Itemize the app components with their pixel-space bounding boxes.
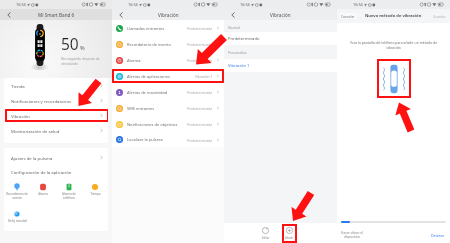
staticText: Vibración 1 bbox=[195, 74, 213, 78]
staticText: Vibración bbox=[11, 113, 30, 119]
button[interactable]: Llamadas entrantes bbox=[112, 20, 224, 36]
staticText: Normal bbox=[228, 25, 240, 30]
staticText: 16:54 bbox=[240, 2, 250, 7]
staticText: Vibración bbox=[158, 12, 179, 18]
staticText: 16:54 bbox=[16, 2, 26, 7]
staticText: 16:54 bbox=[128, 2, 138, 7]
staticText: Cancelar bbox=[341, 14, 355, 18]
staticText: Hacer vibrar el dispositivo bbox=[341, 231, 363, 239]
button[interactable]: Alertas de inactividad bbox=[112, 84, 224, 100]
staticText: Vibración bbox=[270, 12, 291, 18]
staticText: Monitorización de salud bbox=[11, 128, 60, 134]
button[interactable]: Alarma bbox=[112, 52, 224, 68]
button[interactable]: Localizar la pulsera bbox=[112, 132, 224, 147]
staticText: Predeterminado bbox=[187, 26, 213, 30]
button[interactable]: Notificaciones y recordatorios bbox=[4, 93, 108, 108]
button[interactable]: Tiempo bbox=[82, 183, 108, 196]
button[interactable]: Detener bbox=[430, 232, 446, 239]
staticText: Editar bbox=[262, 236, 270, 240]
staticText: Predeterminado bbox=[187, 42, 213, 46]
staticText: Tienda bbox=[11, 83, 25, 89]
button[interactable]: Back bbox=[4, 10, 13, 19]
staticText: Alarma de teléfono bbox=[62, 192, 76, 200]
staticText: Alertas de inactividad bbox=[127, 90, 168, 95]
staticText: Predeterminado bbox=[187, 138, 213, 142]
staticText: Configuración de la aplicación bbox=[11, 169, 72, 175]
staticText: Detener bbox=[431, 233, 445, 238]
staticText: Reloj mundial bbox=[8, 219, 27, 223]
staticText: Alarma bbox=[38, 192, 48, 196]
button[interactable]: Recordatorio de evento bbox=[112, 36, 224, 52]
staticText: Recordatorio de evento bbox=[127, 42, 171, 47]
button[interactable]: Tienda bbox=[4, 78, 108, 93]
staticText: Vibración 1 bbox=[228, 63, 250, 69]
button[interactable]: Monitorización de salud bbox=[4, 123, 108, 138]
button[interactable]: Back bbox=[228, 10, 237, 19]
staticText: % bbox=[80, 44, 85, 52]
button[interactable]: Notificaciones de objetivos bbox=[112, 116, 224, 132]
staticText: 16:54 bbox=[353, 2, 363, 7]
button[interactable]: Alarma de teléfono bbox=[56, 183, 82, 200]
staticText: 50 bbox=[61, 33, 79, 54]
staticText: Ajustes de la pulsera bbox=[11, 155, 53, 161]
staticText: Personaliza bbox=[228, 50, 247, 55]
staticText: Alarma bbox=[127, 58, 141, 63]
button[interactable]: Reloj mundial bbox=[4, 210, 30, 223]
staticText: Localizar la pulsera bbox=[127, 137, 163, 142]
staticText: Toca la pantalla del teléfono para añadi… bbox=[340, 40, 447, 50]
staticText: Tiempo bbox=[90, 192, 101, 196]
staticText: No cargando después de vinculación bbox=[61, 56, 100, 66]
staticText: Predeterminado bbox=[187, 58, 213, 62]
button[interactable]: SMS entrantes bbox=[112, 100, 224, 116]
button[interactable]: Alertas de aplicaciones bbox=[112, 68, 224, 84]
button[interactable]: Cancelar bbox=[339, 13, 357, 19]
staticText: Mi Smart Band 6 bbox=[38, 12, 75, 18]
staticText: Predeterminado bbox=[187, 90, 213, 94]
button[interactable]: Back bbox=[116, 10, 125, 19]
button[interactable]: Alarma bbox=[30, 183, 56, 196]
button[interactable]: Ajustes de la pulsera bbox=[4, 150, 108, 165]
staticText: Guardar bbox=[433, 14, 446, 18]
staticText: SMS entrantes bbox=[127, 106, 155, 111]
button[interactable]: Predeterminado bbox=[224, 32, 337, 45]
staticText: Llamadas entrantes bbox=[127, 26, 165, 31]
staticText: Predeterminado bbox=[228, 36, 260, 42]
staticText: Recordatorio de evento bbox=[6, 192, 28, 200]
button[interactable]: Vibración 1 bbox=[224, 59, 337, 72]
staticText: Predeterminado bbox=[187, 122, 213, 126]
staticText: Nuevo método de vibración bbox=[365, 13, 422, 19]
button[interactable]: Añadir bbox=[282, 224, 297, 243]
button[interactable]: Guardar bbox=[431, 13, 448, 19]
button[interactable]: Recordatorio de evento bbox=[4, 183, 30, 200]
staticText: Notificaciones de objetivos bbox=[127, 122, 178, 127]
staticText: Notificaciones y recordatorios bbox=[11, 98, 72, 104]
staticText: Añadir bbox=[285, 236, 294, 240]
button[interactable]: Vibración bbox=[4, 108, 108, 123]
staticText: Predeterminado bbox=[187, 106, 213, 110]
button[interactable]: Editar bbox=[258, 224, 273, 243]
staticText: Alertas de aplicaciones bbox=[127, 74, 170, 79]
